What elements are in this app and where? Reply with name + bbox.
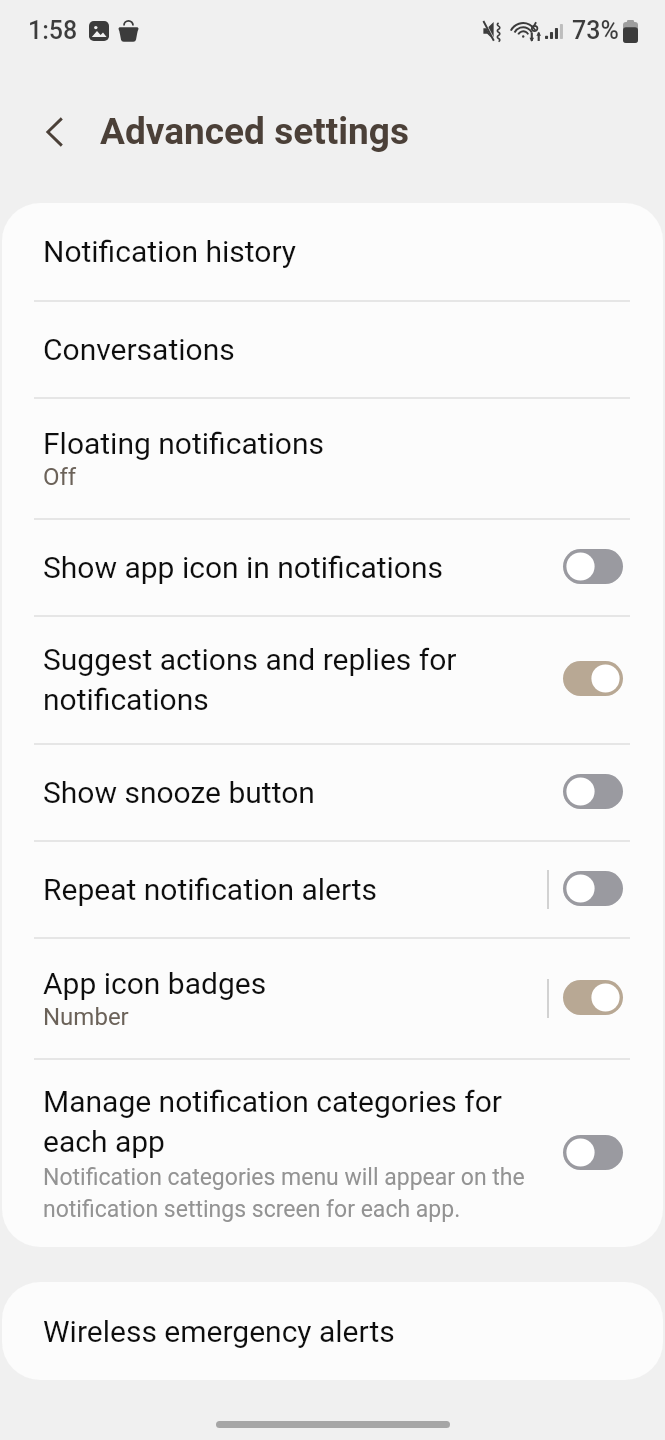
staticText: Conversations bbox=[43, 332, 235, 367]
staticText: Repeat notification alerts bbox=[43, 872, 378, 907]
staticText: Manage notification categories for each … bbox=[43, 1084, 538, 1160]
button[interactable]: Back bbox=[24, 101, 86, 163]
staticText: Show app icon in notifications bbox=[43, 550, 444, 585]
staticText: Notification history bbox=[43, 234, 297, 269]
button[interactable]: Conversations bbox=[2, 302, 663, 397]
staticText: App icon badges bbox=[43, 966, 267, 1001]
button[interactable]: Repeat notification alerts bbox=[2, 842, 663, 937]
button[interactable]: Floating notifications bbox=[2, 399, 663, 518]
button[interactable]: Manage notification categories for each … bbox=[2, 1060, 663, 1247]
staticText: Off bbox=[43, 463, 77, 491]
button[interactable]: Repeat notification alerts bbox=[563, 871, 623, 906]
staticText: Advanced settings bbox=[100, 110, 409, 153]
staticText: Floating notifications bbox=[43, 426, 324, 461]
button[interactable]: Show snooze button bbox=[563, 774, 623, 809]
staticText: Number bbox=[43, 1003, 129, 1031]
staticText: Suggest actions and replies for notifica… bbox=[43, 642, 488, 718]
staticText: Show snooze button bbox=[43, 775, 315, 810]
staticText: Notification categories menu will appear… bbox=[43, 1164, 538, 1223]
button[interactable]: Show snooze button bbox=[2, 745, 663, 840]
staticText: 73% bbox=[572, 16, 619, 45]
staticText: 1:58 bbox=[28, 16, 78, 45]
button[interactable]: Suggest actions and replies for notifica… bbox=[2, 617, 663, 743]
button[interactable]: App icon badges bbox=[2, 939, 663, 1058]
button[interactable]: Suggest actions and replies for notifica… bbox=[563, 661, 623, 696]
button[interactable]: Manage notification categories for each … bbox=[563, 1135, 623, 1170]
button[interactable]: App icon badges bbox=[563, 980, 623, 1015]
button[interactable]: Wireless emergency alerts bbox=[2, 1282, 663, 1380]
staticText: Wireless emergency alerts bbox=[43, 1314, 395, 1349]
button[interactable]: Show app icon in notifications bbox=[563, 549, 623, 584]
button[interactable]: Show app icon in notifications bbox=[2, 520, 663, 615]
button[interactable]: Notification history bbox=[2, 203, 663, 300]
